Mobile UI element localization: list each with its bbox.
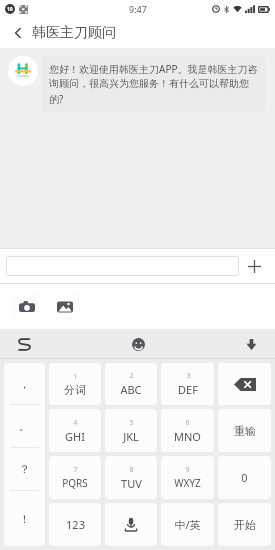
staticText: 6 [185,418,190,428]
staticText: ！ [19,512,30,526]
button[interactable]: 中/英 [161,503,214,546]
button[interactable]: Voice input [105,503,157,546]
button[interactable]: 9 [161,456,214,499]
button[interactable]: Emoji [126,332,150,356]
staticText: 开始 [234,518,256,532]
button[interactable]: Punctuation [4,363,45,546]
staticText: DEF [178,382,198,397]
button[interactable]: 4 [49,409,101,452]
button[interactable]: 3 [161,363,214,405]
button[interactable]: 开始 [218,503,271,546]
button[interactable]: Add [239,251,269,281]
staticText: PQRS [62,476,88,490]
staticText: 分词 [64,383,86,397]
button[interactable]: 7 [49,456,101,499]
button[interactable]: 1 [49,363,101,405]
staticText: 3 [186,371,191,381]
button[interactable]: 123 [49,503,101,546]
staticText: 0 [241,470,248,485]
staticText: 8 [129,465,134,475]
staticText: ABC [120,382,142,397]
staticText: 2 [129,371,134,381]
button[interactable]: 6 [161,409,214,452]
button[interactable]: Avatar [8,56,38,86]
staticText: 123 [66,517,85,532]
staticText: ？ [19,462,30,476]
staticText: 您好！欢迎使用韩医主刀APP。我是韩医主刀咨询顾问，很高兴为您服务！有什么可以帮… [49,62,258,106]
button[interactable]: Gallery [50,292,80,322]
staticText: WXYZ [174,476,201,490]
staticText: 9 [185,465,190,475]
staticText: 。 [19,419,30,433]
button[interactable]: 2 [105,363,157,405]
button[interactable]: Message input [6,256,239,276]
staticText: 9:47 [129,3,147,15]
button[interactable]: 0 [218,456,271,499]
button[interactable]: 您好！欢迎使用韩医主刀APP。我是韩医主刀咨询顾问，很高兴为您服务！有什么可以帮… [49,62,258,106]
staticText: JKL [123,429,139,444]
button[interactable]: Backspace [218,363,271,405]
button[interactable]: Hide keyboard [239,332,263,356]
button[interactable]: Sogou input [12,332,36,356]
staticText: 中/英 [174,517,201,532]
button[interactable]: 重输 [218,409,271,452]
staticText: 4 [73,418,78,428]
button[interactable]: Camera [12,292,42,322]
staticText: MNO [174,429,201,444]
staticText: ， [19,377,30,391]
button[interactable]: 5 [105,409,157,452]
staticText: 10 [7,6,13,13]
button[interactable]: 8 [105,456,157,499]
staticText: GHI [65,429,85,444]
staticText: TUV [121,476,142,491]
staticText: 7 [73,465,78,475]
staticText: 重输 [234,424,256,438]
staticText: 1 [73,372,78,382]
button[interactable]: Back [6,21,30,45]
staticText: 5 [129,418,134,428]
staticText: 韩医主刀顾问 [32,24,116,42]
